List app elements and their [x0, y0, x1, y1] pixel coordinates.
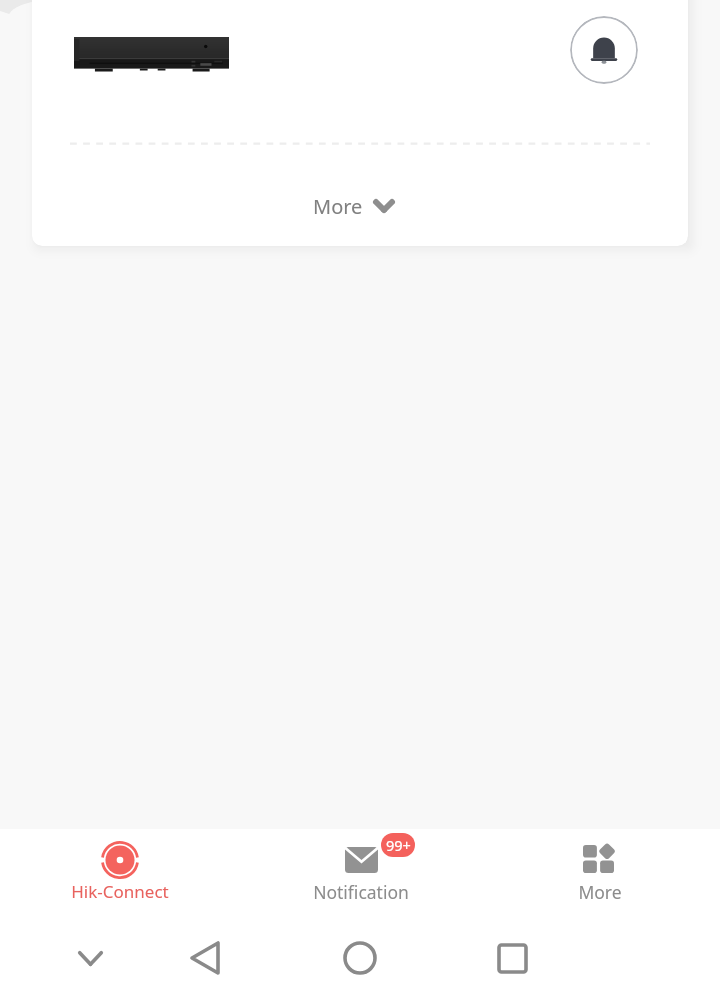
button[interactable]: More [32, 180, 682, 232]
button[interactable]: Network video recorder [32, 0, 688, 246]
other: Network video recorder [74, 37, 229, 71]
button[interactable]: Recent apps [474, 916, 550, 1000]
staticText: More [578, 880, 622, 904]
button[interactable]: 99+ [271, 829, 451, 916]
staticText: 99+ [386, 835, 411, 855]
staticText: Notification [313, 880, 409, 904]
staticText: Hik-Connect [71, 880, 169, 903]
button[interactable]: Home [322, 916, 398, 1000]
button[interactable]: Back [167, 916, 243, 1000]
button[interactable]: Alarm notifications [570, 16, 638, 84]
staticText: More [313, 193, 363, 220]
button[interactable]: Hik-Connect [30, 829, 210, 916]
button[interactable]: More [510, 829, 690, 916]
button[interactable]: Hide keyboard [52, 916, 128, 1000]
